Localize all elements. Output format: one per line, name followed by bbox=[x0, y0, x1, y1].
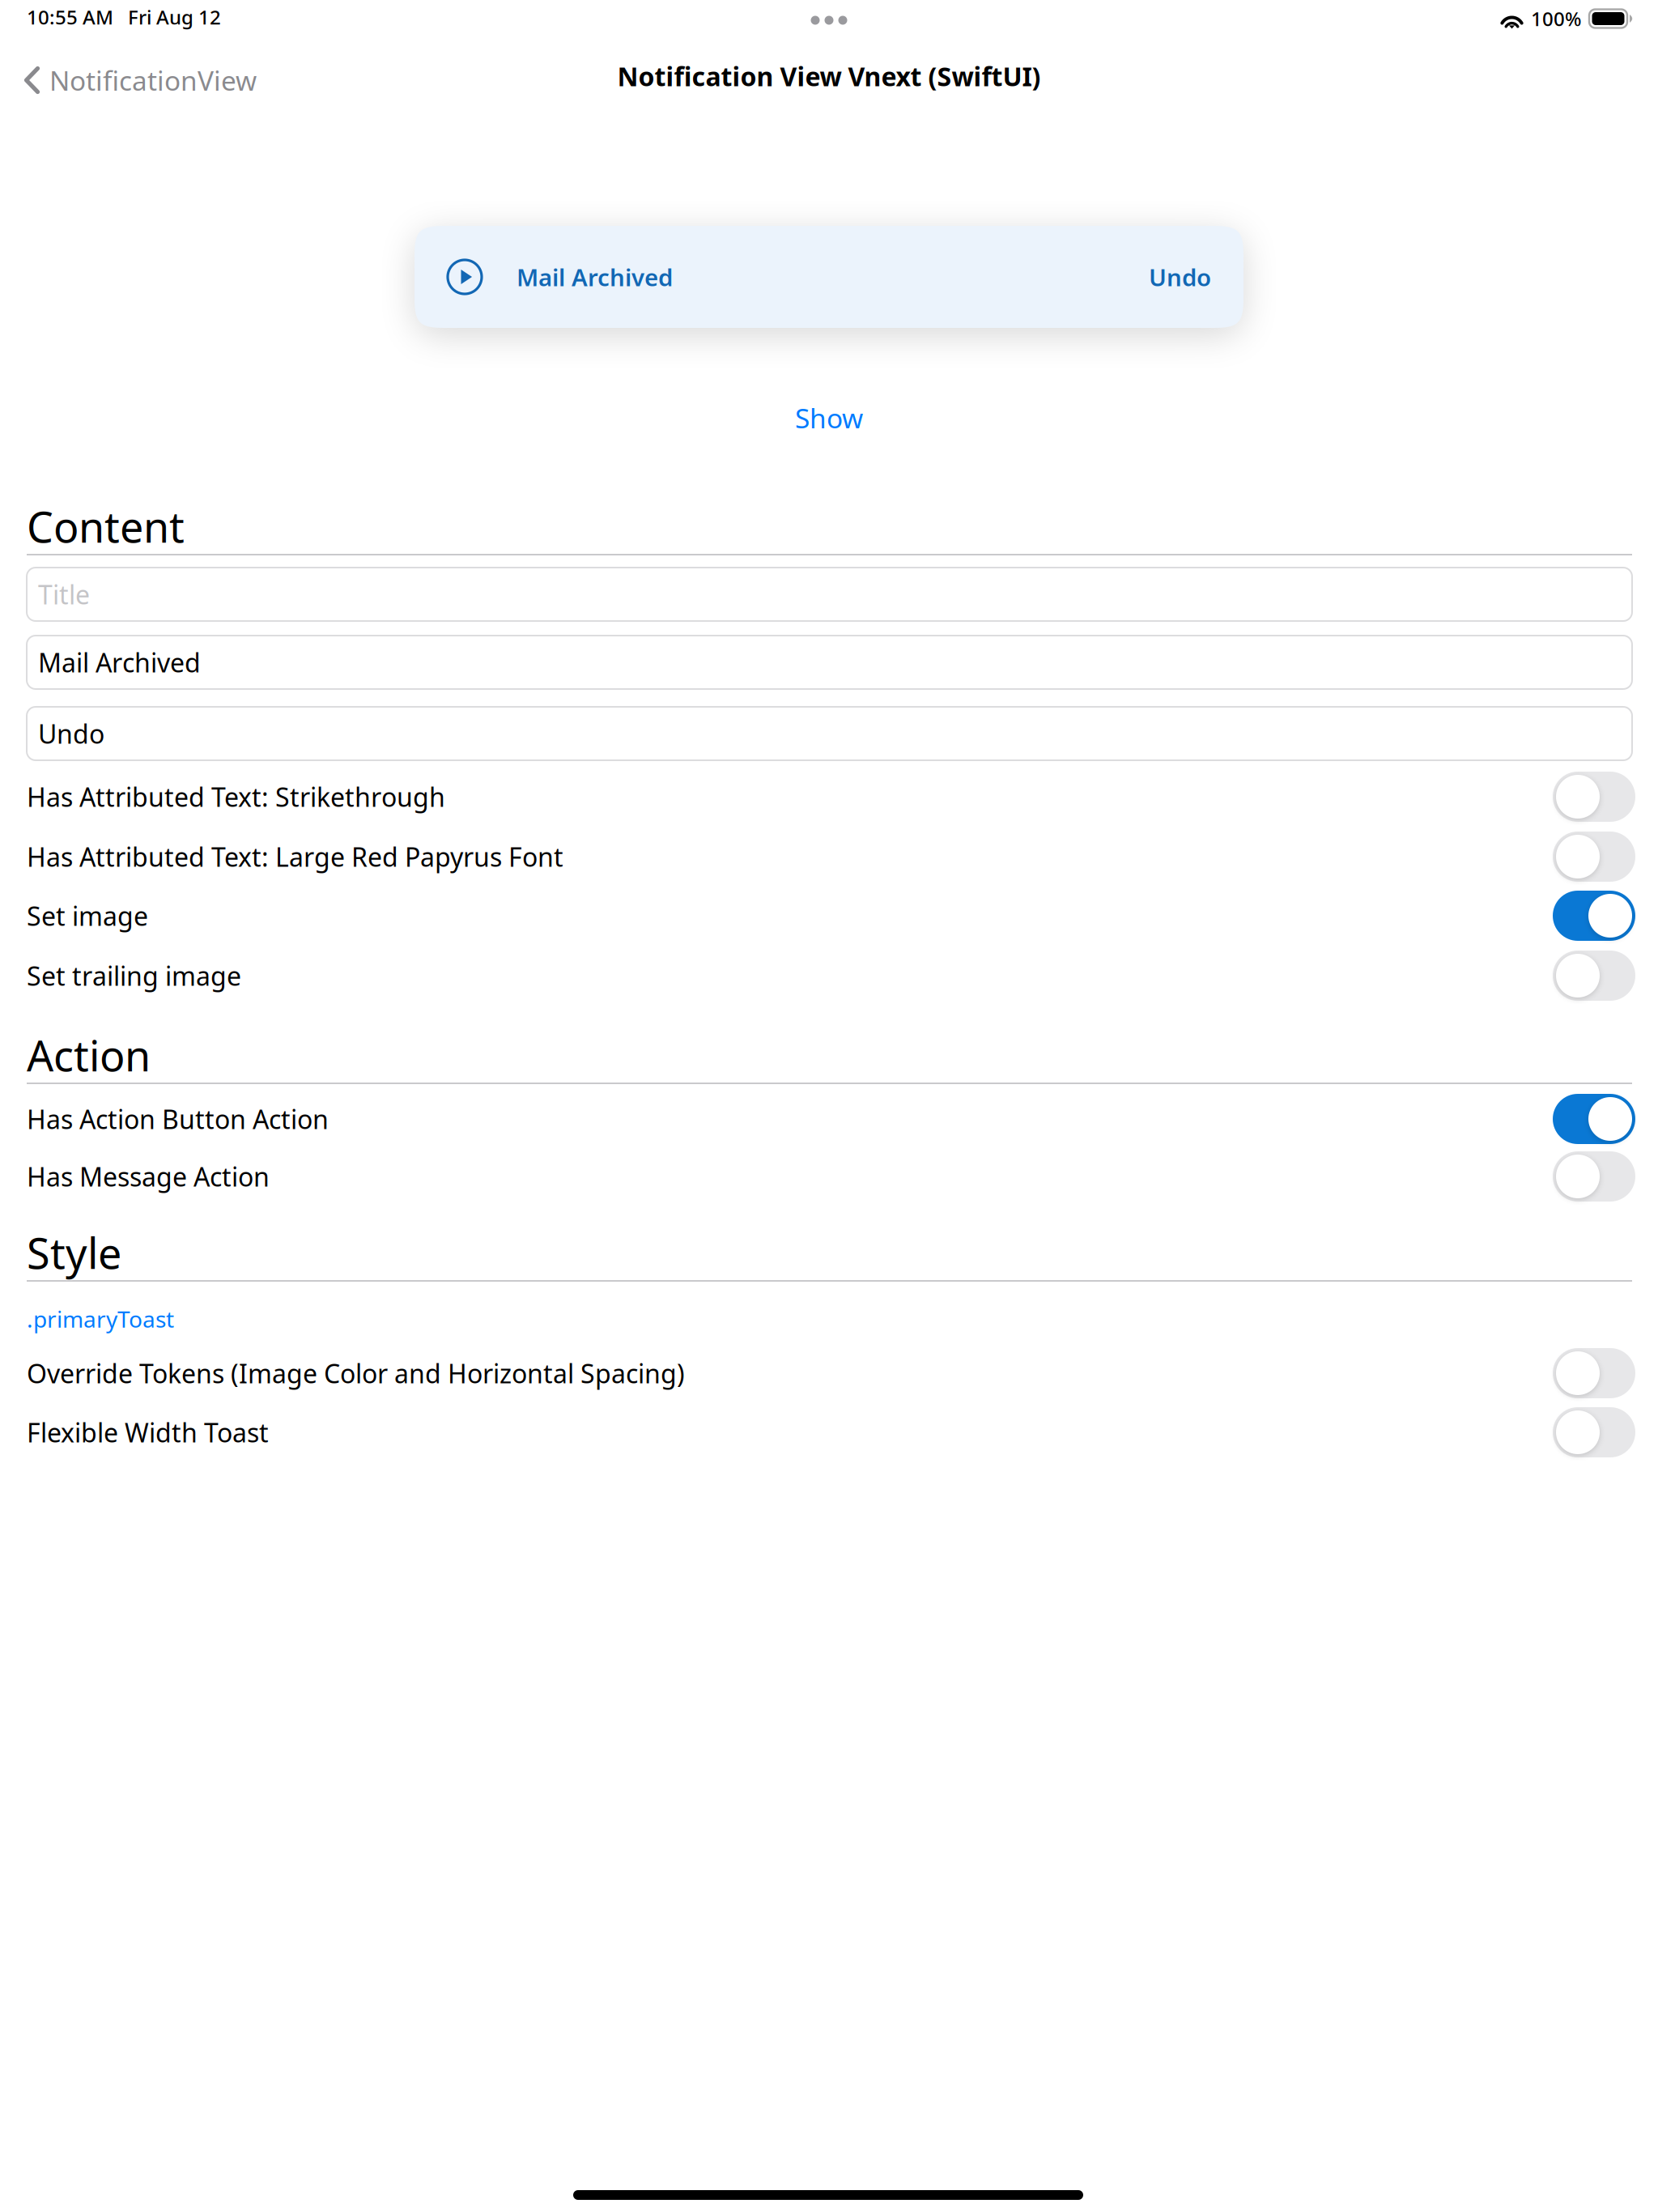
staticText: Has Action Button Action bbox=[27, 1102, 329, 1136]
button[interactable]: Show bbox=[748, 389, 910, 446]
button[interactable]: Has Attributed Text: Strikethrough bbox=[27, 766, 1635, 827]
staticText: Mail Archived bbox=[38, 645, 201, 680]
staticText: Flexible Width Toast bbox=[27, 1415, 269, 1450]
button[interactable]: Has Attributed Text: Large Red Papyrus F… bbox=[27, 826, 1635, 887]
button[interactable]: Toggle, on bbox=[1553, 891, 1635, 941]
button[interactable]: Undo bbox=[1129, 226, 1243, 328]
staticText: Set trailing image bbox=[27, 958, 241, 993]
staticText: Action bbox=[27, 1027, 151, 1083]
button[interactable]: Back to NotificationView bbox=[23, 49, 298, 111]
staticText: Has Message Action bbox=[27, 1159, 270, 1194]
button[interactable]: Toggle, off bbox=[1553, 1348, 1635, 1398]
staticText: Show bbox=[795, 400, 863, 436]
staticText: Style bbox=[27, 1225, 121, 1281]
button[interactable]: Flexible Width Toast bbox=[27, 1402, 1635, 1463]
staticText: Undo bbox=[1149, 261, 1211, 293]
button[interactable]: Toggle, off bbox=[1553, 772, 1635, 822]
button[interactable]: Set trailing image bbox=[27, 945, 1635, 1006]
button[interactable]: Toggle, off bbox=[1553, 832, 1635, 882]
staticText: NotificationView bbox=[49, 62, 257, 98]
staticText: Has Attributed Text: Strikethrough bbox=[27, 780, 445, 814]
staticText: Has Attributed Text: Large Red Papyrus F… bbox=[27, 839, 563, 874]
button[interactable]: Toggle, on bbox=[1553, 1094, 1635, 1144]
staticText: 100% bbox=[1531, 6, 1581, 32]
staticText: Notification View Vnext (SwiftUI) bbox=[617, 59, 1041, 93]
button[interactable]: Toggle, off bbox=[1553, 1151, 1635, 1202]
button[interactable]: Has Action Button Action bbox=[27, 1088, 1635, 1150]
button[interactable]: Toggle, off bbox=[1553, 1407, 1635, 1457]
staticText: Title bbox=[38, 577, 90, 612]
staticText: 10:55 AM Fri Aug 12 bbox=[27, 4, 221, 30]
staticText: Content bbox=[27, 498, 185, 554]
staticText: Override Tokens (Image Color and Horizon… bbox=[27, 1356, 685, 1390]
button[interactable]: Has Message Action bbox=[27, 1146, 1635, 1207]
button[interactable]: Toggle, off bbox=[1553, 951, 1635, 1001]
staticText: Mail Archived bbox=[517, 261, 673, 293]
staticText: Set image bbox=[27, 899, 148, 933]
button[interactable]: Override Tokens (Image Color and Horizon… bbox=[27, 1342, 1635, 1404]
staticText: .primaryToast bbox=[27, 1304, 174, 1334]
button[interactable]: Set image bbox=[27, 885, 1635, 946]
button[interactable]: .primaryToast bbox=[27, 1294, 1632, 1344]
staticText: Undo bbox=[38, 716, 104, 751]
